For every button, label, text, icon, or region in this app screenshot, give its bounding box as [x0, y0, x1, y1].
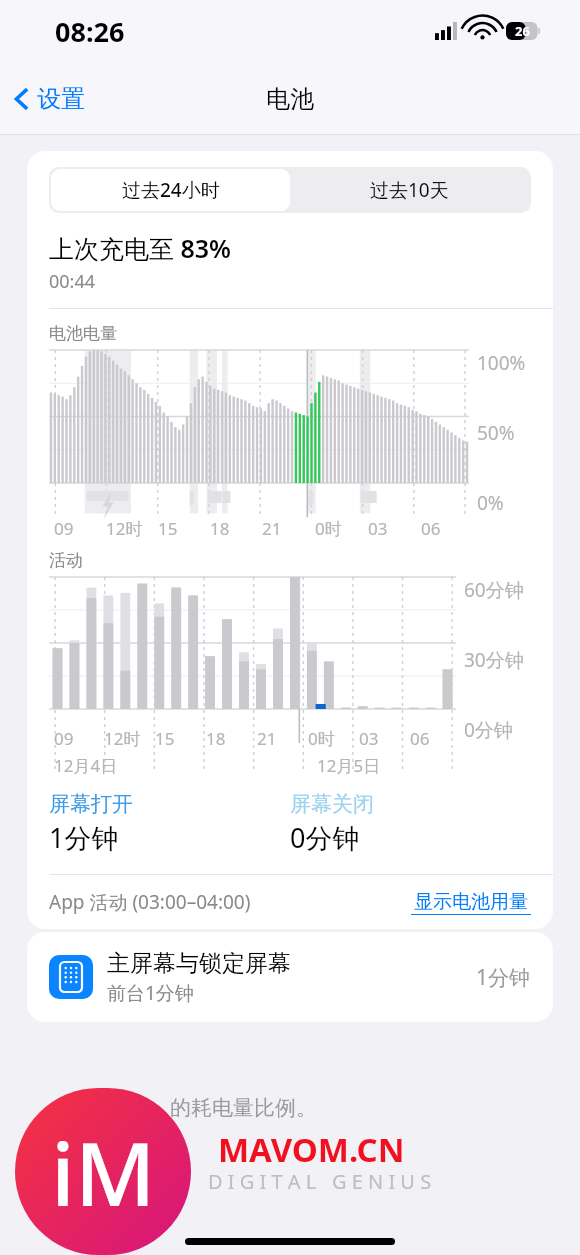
- button[interactable]: Back: [0, 76, 95, 122]
- staticText: 屏幕打开: [49, 791, 133, 817]
- other: Back: [14, 86, 30, 112]
- button[interactable]: 显示电池用量: [411, 890, 531, 915]
- staticText: App 活动 (03:00–04:00): [49, 889, 251, 915]
- staticText: 08:26: [55, 13, 125, 50]
- staticText: 21: [262, 517, 282, 540]
- staticText: 显示电池用量: [414, 890, 528, 914]
- staticText: 06: [421, 517, 441, 540]
- staticText: 活动: [49, 550, 83, 571]
- staticText: 30分钟: [464, 647, 524, 673]
- staticText: 12月4日: [54, 754, 118, 777]
- staticText: D I G I T A L G E N I U S: [208, 1168, 432, 1195]
- staticText: 0%: [477, 490, 504, 516]
- staticText: 09: [54, 517, 74, 540]
- button[interactable]: 主屏幕与锁定屏幕: [27, 932, 553, 1022]
- staticText: 的耗电量比例。: [170, 1095, 317, 1121]
- staticText: 12时: [104, 727, 141, 750]
- staticText: 1分钟: [476, 963, 531, 992]
- staticText: 过去24小时: [122, 177, 220, 203]
- staticText: 50%: [477, 420, 515, 446]
- staticText: 屏幕关闭: [290, 791, 374, 817]
- staticText: 电池: [266, 84, 314, 114]
- staticText: 09: [54, 727, 74, 750]
- staticText: 设置: [37, 84, 85, 114]
- staticText: 18: [210, 517, 230, 540]
- staticText: 03: [359, 727, 379, 750]
- staticText: 00:44: [49, 269, 96, 294]
- button[interactable]: 过去10天: [290, 169, 529, 211]
- staticText: 15: [155, 727, 175, 750]
- button[interactable]: 过去24小时: [51, 169, 290, 211]
- staticText: 26: [515, 22, 530, 40]
- staticText: MAVOM.CN: [218, 1127, 405, 1172]
- staticText: 0时: [315, 517, 342, 540]
- staticText: 12月5日: [317, 754, 381, 777]
- staticText: 主屏幕与锁定屏幕: [107, 949, 291, 978]
- staticText: 06: [410, 727, 430, 750]
- staticText: 100%: [477, 350, 526, 376]
- staticText: 03: [368, 517, 388, 540]
- staticText: 12时: [106, 517, 143, 540]
- staticText: iM: [51, 1112, 156, 1232]
- staticText: 15: [158, 517, 178, 540]
- staticText: 0分钟: [464, 717, 513, 743]
- staticText: 电池电量: [49, 323, 117, 344]
- staticText: 1分钟: [49, 819, 119, 856]
- staticText: 0分钟: [290, 819, 360, 856]
- staticText: 18: [206, 727, 226, 750]
- staticText: 过去10天: [370, 177, 449, 203]
- staticText: 前台1分钟: [107, 980, 194, 1006]
- staticText: 60分钟: [464, 577, 524, 603]
- staticText: 上次充电至 83%: [49, 231, 231, 265]
- staticText: 21: [257, 727, 277, 750]
- staticText: 0时: [308, 727, 335, 750]
